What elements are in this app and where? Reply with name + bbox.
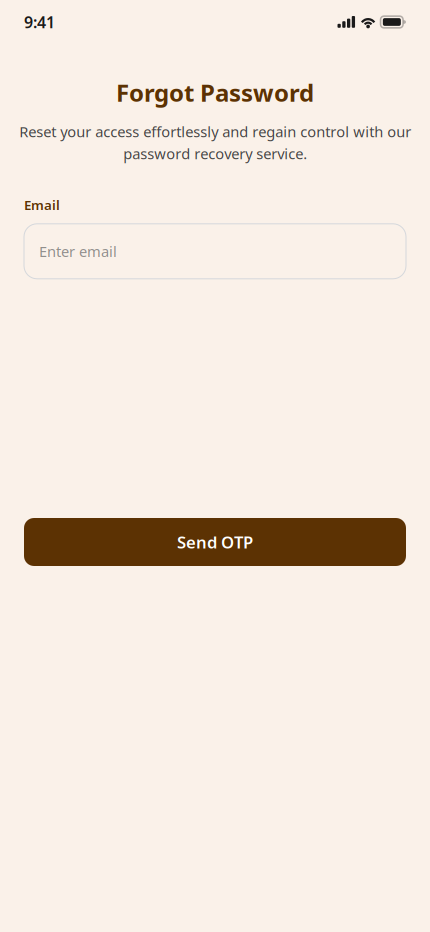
staticText: Forgot Password bbox=[116, 76, 314, 109]
staticText: Email bbox=[24, 196, 60, 214]
staticText: Reset your access effortlessly and regai… bbox=[19, 122, 411, 164]
button[interactable]: Enter email bbox=[24, 224, 406, 279]
staticText: 9:41 bbox=[24, 11, 55, 33]
staticText: Enter email bbox=[39, 241, 117, 261]
button[interactable]: Send OTP bbox=[24, 518, 406, 566]
staticText: Send OTP bbox=[177, 531, 253, 553]
